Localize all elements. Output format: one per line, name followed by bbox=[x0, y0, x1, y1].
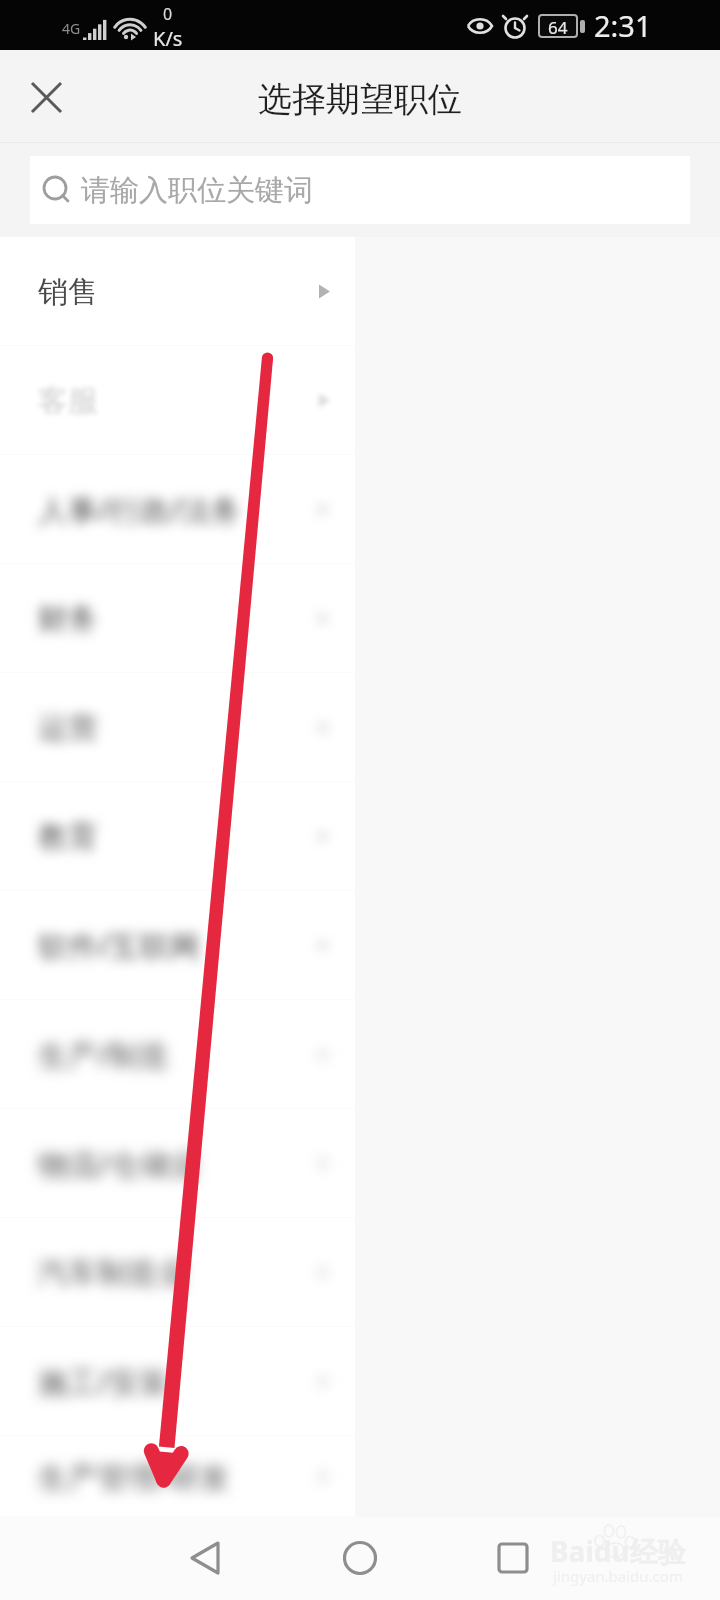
button[interactable]: Back bbox=[169, 1522, 241, 1594]
button[interactable]: Home bbox=[324, 1522, 396, 1594]
staticText: 0 bbox=[163, 3, 173, 25]
staticText: 物流/仓储业 bbox=[38, 1143, 200, 1184]
staticText: 选择期望职位 bbox=[258, 78, 462, 121]
staticText: 64 bbox=[548, 16, 568, 36]
staticText: 生产/制造 bbox=[38, 1034, 170, 1075]
button[interactable]: 财务 bbox=[0, 564, 355, 673]
staticText: 施工/安装 bbox=[38, 1361, 170, 1402]
staticText: 销售 bbox=[38, 273, 98, 311]
button[interactable]: 客服 bbox=[0, 346, 355, 455]
button[interactable]: 软件/互联网 bbox=[0, 891, 355, 1000]
staticText: 运营 bbox=[38, 709, 98, 747]
staticText: Baidu经验 bbox=[550, 1532, 686, 1570]
button[interactable]: Recent apps bbox=[477, 1522, 549, 1594]
staticText: jingyan.baidu.com bbox=[553, 1566, 683, 1586]
staticText: 4G bbox=[62, 19, 81, 38]
button[interactable]: 汽车制造业 bbox=[0, 1218, 355, 1327]
staticText: K/s bbox=[153, 25, 183, 52]
button[interactable]: 销售 bbox=[0, 237, 355, 346]
staticText: 请输入职位关键词 bbox=[81, 172, 313, 209]
button[interactable]: 施工/安装 bbox=[0, 1327, 355, 1436]
staticText: 财务 bbox=[38, 600, 98, 638]
button[interactable]: 人事/行政/法务 bbox=[0, 455, 355, 564]
button[interactable]: 生产/制造 bbox=[0, 1000, 355, 1109]
button[interactable]: Close bbox=[14, 65, 78, 129]
button[interactable]: 教育 bbox=[0, 782, 355, 891]
staticText: 2:31 bbox=[594, 6, 652, 45]
staticText: 汽车制造业 bbox=[38, 1254, 188, 1292]
staticText: 客服 bbox=[38, 382, 98, 420]
button[interactable]: 运营 bbox=[0, 673, 355, 782]
staticText: 软件/互联网 bbox=[38, 925, 200, 966]
staticText: 教育 bbox=[38, 818, 98, 856]
staticText: 人事/行政/法务 bbox=[38, 489, 242, 530]
button[interactable]: 物流/仓储业 bbox=[0, 1109, 355, 1218]
staticText: 生产管理/研发 bbox=[38, 1456, 230, 1497]
button[interactable]: 请输入职位关键词 bbox=[30, 156, 690, 224]
button[interactable]: 生产管理/研发 bbox=[0, 1436, 355, 1517]
